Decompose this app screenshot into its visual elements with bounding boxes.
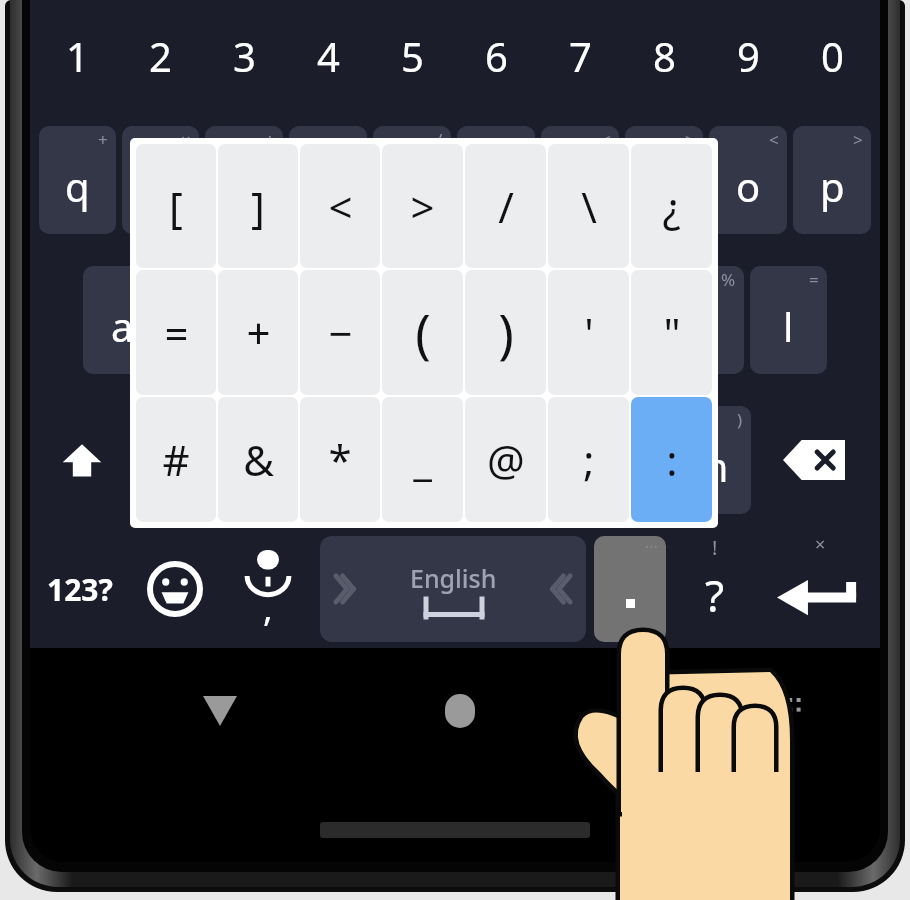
button[interactable]: Switch keyboard: [750, 676, 820, 746]
button[interactable]: @: [465, 397, 546, 522]
button[interactable]: ': [490, 406, 573, 514]
button[interactable]: /: [465, 144, 546, 268]
button[interactable]: 1: [36, 0, 119, 112]
button[interactable]: +: [39, 126, 116, 234]
button[interactable]: (: [382, 270, 463, 395]
staticText: =: [164, 304, 189, 361]
button[interactable]: ": [631, 270, 712, 395]
button[interactable]: =: [289, 126, 367, 234]
button[interactable]: Home: [425, 676, 495, 746]
staticText: 7: [569, 29, 592, 83]
button[interactable]: Backspace: [754, 402, 874, 518]
staticText: *: [328, 431, 352, 488]
button[interactable]: 6: [454, 0, 538, 112]
staticText: English: [410, 561, 497, 595]
button[interactable]: #: [251, 266, 329, 374]
button[interactable]: <: [300, 144, 380, 268]
button[interactable]: >: [625, 126, 703, 234]
staticText: $: [394, 268, 404, 291]
button[interactable]: &: [218, 397, 298, 522]
staticText: +: [246, 304, 271, 361]
staticText: /: [498, 178, 514, 235]
button[interactable]: !: [670, 528, 760, 650]
staticText: l: [783, 299, 794, 353]
button[interactable]: Enter: [760, 528, 880, 650]
button[interactable]: ': [548, 270, 629, 395]
button[interactable]: 9: [706, 0, 790, 112]
button[interactable]: >: [793, 126, 871, 234]
button[interactable]: 4: [286, 0, 370, 112]
button[interactable]: [: [136, 144, 216, 268]
button[interactable]: <: [541, 126, 619, 234]
staticText: >: [685, 128, 695, 151]
button[interactable]: Emoji: [130, 528, 220, 650]
button[interactable]: Back: [185, 676, 255, 746]
button[interactable]: ···: [594, 536, 666, 642]
button[interactable]: ×: [122, 126, 199, 234]
button[interactable]: &: [584, 266, 661, 374]
button[interactable]: <: [709, 126, 787, 234]
staticText: b: [519, 439, 544, 493]
button[interactable]: _: [382, 397, 463, 522]
button[interactable]: -: [311, 406, 395, 514]
button[interactable]: 2: [119, 0, 202, 112]
button[interactable]: 3: [202, 0, 286, 112]
button[interactable]: 0: [790, 0, 874, 112]
staticText: h: [527, 299, 552, 353]
button[interactable]: #: [136, 397, 216, 522]
button[interactable]: :: [579, 406, 662, 514]
staticText: p: [820, 159, 845, 213]
staticText: ···: [645, 536, 658, 558]
button[interactable]: =: [136, 270, 216, 395]
staticText: e: [233, 159, 256, 213]
button[interactable]: ;: [548, 397, 629, 522]
button[interactable]: 7: [538, 0, 622, 112]
button[interactable]: Shift: [36, 402, 128, 518]
button[interactable]: ÷: [205, 126, 283, 234]
button[interactable]: %: [418, 266, 495, 374]
staticText: t: [405, 159, 420, 213]
staticText: 1: [66, 29, 89, 83]
staticText: 5: [401, 29, 424, 83]
button[interactable]: ): [668, 406, 751, 514]
button[interactable]: \: [548, 144, 629, 268]
staticText: _: [519, 128, 527, 151]
button[interactable]: ]: [218, 144, 298, 268]
button[interactable]: %: [667, 266, 744, 374]
button[interactable]: >: [382, 144, 463, 268]
staticText: 3: [233, 29, 256, 83]
button[interactable]: /: [373, 126, 451, 234]
button[interactable]: English: [320, 536, 586, 642]
button[interactable]: −: [300, 270, 380, 395]
button[interactable]: :: [631, 397, 712, 522]
staticText: k: [695, 299, 717, 353]
button[interactable]: !: [83, 266, 161, 374]
staticText: n: [608, 439, 633, 493]
button[interactable]: 8: [622, 0, 706, 112]
button[interactable]: ^: [501, 266, 578, 374]
button[interactable]: 123?: [30, 528, 130, 650]
button[interactable]: _: [457, 126, 535, 234]
button[interactable]: Comma, voice input: [220, 528, 316, 650]
button[interactable]: ¿: [631, 144, 712, 268]
button[interactable]: ): [221, 406, 305, 514]
staticText: g: [444, 299, 469, 353]
button[interactable]: *: [300, 397, 380, 522]
staticText: &: [243, 431, 274, 488]
button[interactable]: +: [218, 270, 298, 395]
button[interactable]: ": [401, 406, 484, 514]
button[interactable]: $: [335, 266, 412, 374]
button[interactable]: =: [750, 266, 827, 374]
staticText: ×: [181, 128, 191, 151]
button[interactable]: 5: [370, 0, 454, 112]
button[interactable]: @: [167, 266, 245, 374]
button[interactable]: (: [131, 406, 215, 514]
button[interactable]: ): [465, 270, 546, 395]
staticText: d: [278, 299, 303, 353]
staticText: ×: [815, 532, 826, 557]
